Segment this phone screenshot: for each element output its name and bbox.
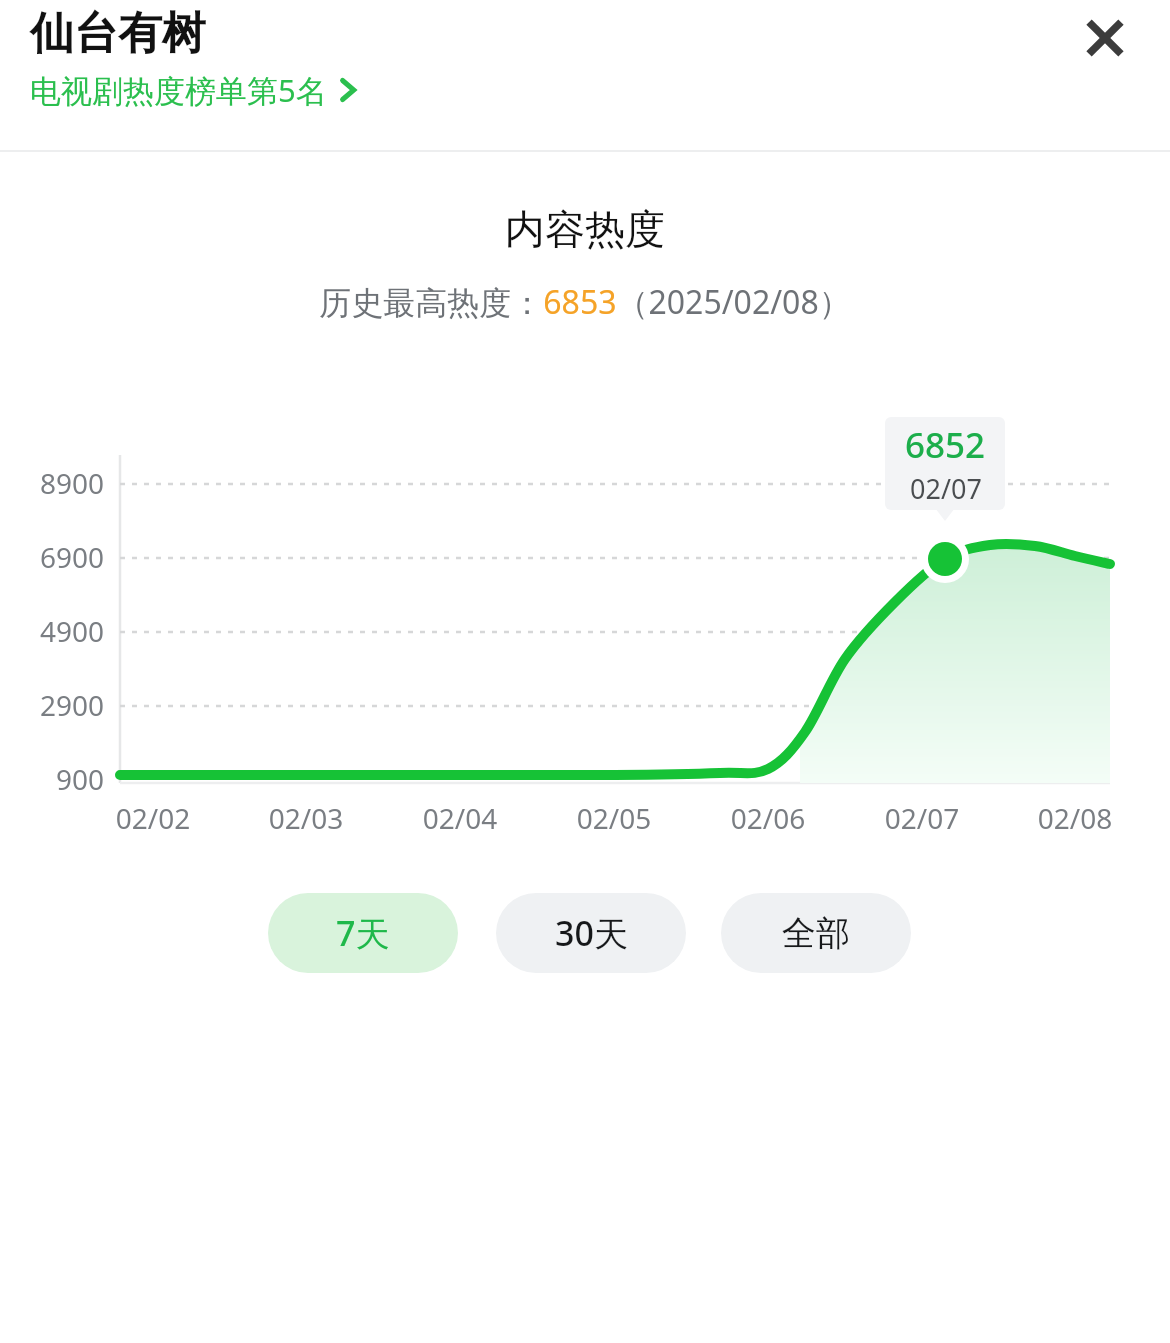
- staticText: 02/07: [862, 799, 982, 837]
- staticText: 02/05: [554, 799, 674, 837]
- staticText: 仙台有树: [30, 6, 206, 61]
- staticText: 02/06: [708, 799, 828, 837]
- button[interactable]: 电视剧热度榜单第5名: [30, 69, 357, 111]
- button[interactable]: 30天: [496, 893, 686, 973]
- staticText: 900: [0, 760, 104, 798]
- staticText: 电视剧热度榜单第5名: [30, 69, 327, 111]
- staticText: 02/07: [910, 470, 982, 507]
- button[interactable]: 7天: [268, 893, 458, 973]
- staticText: 8900: [0, 464, 104, 502]
- staticText: 6852: [905, 421, 986, 469]
- button[interactable]: Close: [1069, 2, 1141, 74]
- staticText: 02/08: [1015, 799, 1135, 837]
- staticText: 02/03: [246, 799, 366, 837]
- staticText: 内容热度: [0, 204, 1170, 254]
- staticText: 7天: [336, 910, 390, 956]
- staticText: 2900: [0, 686, 104, 724]
- staticText: 全部: [782, 912, 850, 955]
- staticText: 30天: [555, 910, 628, 956]
- staticText: 历史最高热度：6853（2025/02/08）: [0, 280, 1170, 324]
- staticText: 02/04: [400, 799, 520, 837]
- staticText: 02/02: [93, 799, 213, 837]
- staticText: 6900: [0, 538, 104, 576]
- button[interactable]: 全部: [721, 893, 911, 973]
- staticText: 4900: [0, 612, 104, 650]
